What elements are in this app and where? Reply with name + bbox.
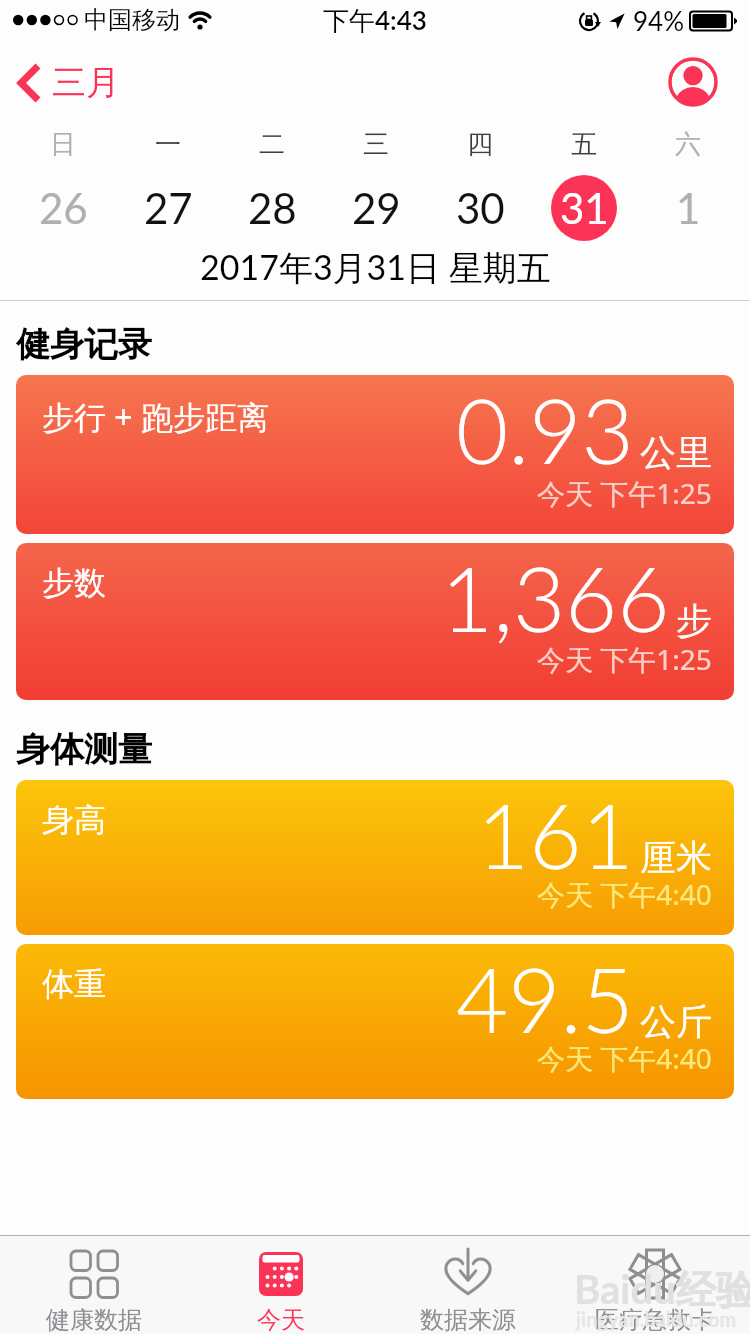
staticText: 今天 [257,1305,305,1334]
staticText: 今天 下午1:25 [537,640,712,678]
staticText: jingyan.baidu.com [576,1307,737,1331]
button[interactable]: 步数 [16,543,734,700]
button[interactable]: 28 [240,176,304,240]
staticText: 29 [352,183,401,233]
staticText: 身高 [42,800,106,840]
staticText: 49.5 [456,944,634,1052]
staticText: 今天 下午1:25 [537,474,712,512]
button[interactable]: 31 [551,175,617,241]
staticText: 公斤 [640,999,712,1044]
staticText: 医疗急救卡 [595,1305,715,1334]
staticText: 2017年3月31日 星期五 [200,246,551,290]
staticText: 161 [477,780,634,888]
button[interactable]: 体重 [16,944,734,1099]
button[interactable]: 30 [448,176,512,240]
staticText: 日 [50,128,76,161]
staticText: 三 [363,128,389,161]
staticText: 今天 下午4:40 [537,875,712,913]
staticText: 1 [676,183,701,233]
staticText: 步 [676,598,712,643]
staticText: 今天 下午4:40 [537,1039,712,1077]
button[interactable]: 步行 + 跑步距离 [16,375,734,534]
staticText: 一 [155,128,181,161]
staticText: 厘米 [640,835,712,880]
staticText: 数据来源 [420,1305,516,1334]
staticText: 1,366 [441,543,670,651]
staticText: 健身记录 [16,323,152,366]
staticText: 身体测量 [16,728,152,771]
staticText: 28 [248,183,297,233]
button[interactable] [668,57,718,107]
staticText: 31 [560,183,609,233]
staticText: 26 [39,183,88,233]
staticText: 体重 [42,964,106,1004]
button[interactable]: 今天 [187,1236,374,1334]
staticText: 27 [144,183,193,233]
button[interactable]: 三月 [16,61,120,104]
staticText: 步数 [42,563,106,603]
staticText: 四 [467,128,493,161]
staticText: 健康数据 [46,1305,142,1334]
staticText: 六 [675,128,701,161]
button[interactable]: 健康数据 [0,1236,187,1334]
staticText: 30 [456,183,505,233]
button[interactable]: 29 [344,176,408,240]
staticText: Baidu经验 [574,1265,750,1316]
staticText: 0.93 [456,375,634,483]
staticText: 中国移动 [84,5,180,35]
staticText: 步行 + 跑步距离 [42,395,269,439]
staticText: 五 [571,128,597,161]
button[interactable]: 数据来源 [374,1236,561,1334]
staticText: 二 [259,128,285,161]
staticText: 下午4:43 [323,4,427,37]
staticText: 三月 [52,61,120,104]
button[interactable]: 26 [31,176,95,240]
button[interactable]: 1 [656,176,720,240]
button[interactable]: 27 [136,176,200,240]
staticText: 94% [633,5,684,36]
staticText: 公里 [640,430,712,475]
button[interactable]: 医疗急救卡 [561,1236,748,1334]
button[interactable]: 身高 [16,780,734,935]
